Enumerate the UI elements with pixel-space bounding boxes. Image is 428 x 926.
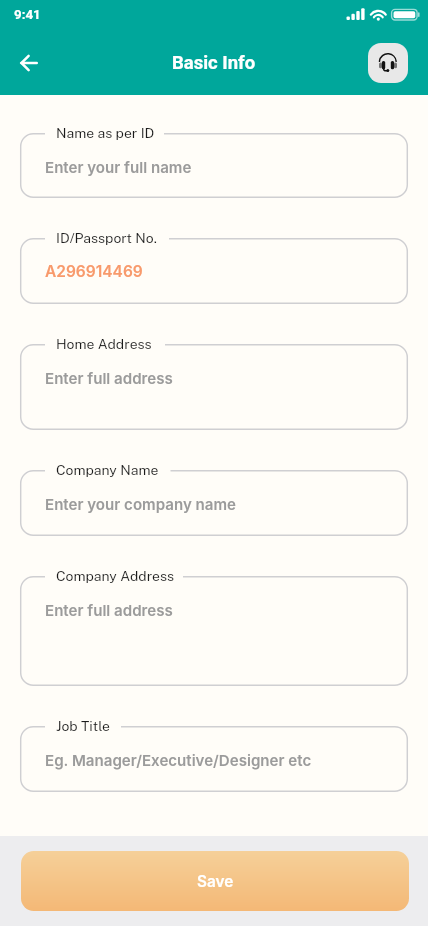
button[interactable]: Job Title	[20, 726, 408, 792]
button[interactable]: Customer support	[368, 43, 408, 83]
staticText: Basic Info	[172, 52, 256, 74]
staticText: Enter full address	[45, 369, 173, 387]
staticText: Enter your full name	[45, 158, 192, 176]
button[interactable]: ID/Passport No.	[20, 238, 408, 304]
staticText: ID/Passport No.	[56, 230, 157, 246]
button[interactable]: Home Address	[20, 344, 408, 430]
staticText: Company Address	[56, 568, 174, 584]
staticText: Save	[197, 872, 234, 891]
button[interactable]: Company Name	[20, 470, 408, 536]
staticText: A296914469	[45, 262, 143, 281]
staticText: Name as per ID	[56, 125, 155, 141]
staticText: 9:41	[14, 7, 41, 23]
button[interactable]: Name as per ID	[20, 133, 408, 198]
staticText: Company Name	[56, 462, 159, 478]
button[interactable]: Save	[21, 851, 409, 911]
button[interactable]: Back	[9, 43, 49, 83]
staticText: Enter your company name	[45, 495, 236, 513]
staticText: Enter full address	[45, 601, 173, 619]
staticText: Job Title	[56, 718, 110, 734]
button[interactable]: Company Address	[20, 576, 408, 686]
staticText: Home Address	[56, 336, 152, 352]
staticText: Eg. Manager/Executive/Designer etc	[45, 751, 312, 769]
